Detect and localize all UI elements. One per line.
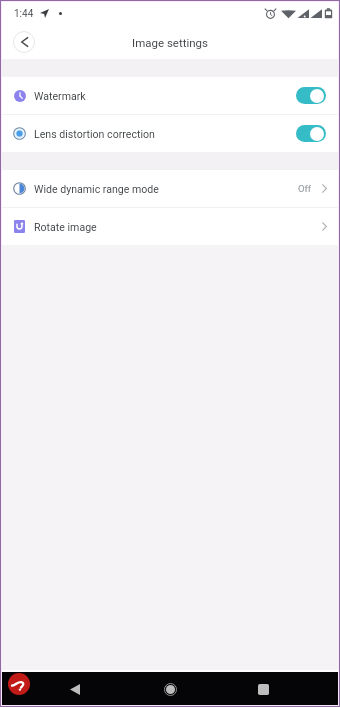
button[interactable]: Watermark (2, 77, 338, 114)
button[interactable]: Toggle (296, 87, 326, 104)
staticText: 1:44 (14, 8, 34, 20)
staticText: Watermark (34, 90, 86, 102)
button[interactable]: Back (60, 674, 90, 704)
button[interactable]: Home (155, 674, 185, 704)
button[interactable]: Toggle (296, 125, 326, 142)
staticText: Lens distortion correction (34, 128, 155, 140)
button[interactable]: Wide dynamic range mode (2, 170, 338, 207)
staticText: Wide dynamic range mode (34, 183, 159, 195)
staticText: Rotate image (34, 221, 97, 233)
staticText: Off (298, 183, 312, 194)
button[interactable]: Recents (248, 674, 278, 704)
button[interactable]: Lens distortion correction (2, 115, 338, 152)
button[interactable]: Screen recorder (8, 673, 30, 695)
button[interactable]: Back (13, 31, 35, 53)
button[interactable]: Rotate image (2, 208, 338, 245)
staticText: Image settings (132, 36, 208, 49)
